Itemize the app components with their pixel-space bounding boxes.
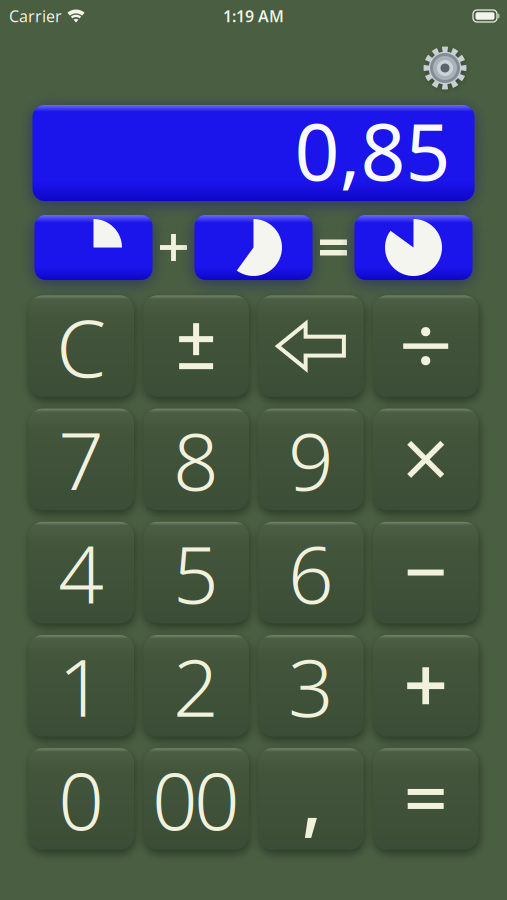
button[interactable]: Multiply (373, 409, 478, 510)
staticText: 9 (288, 406, 334, 512)
button[interactable]: Equals (373, 748, 478, 850)
staticText: 7 (58, 406, 104, 512)
button[interactable]: 0 (29, 748, 134, 850)
button[interactable]: 8 (143, 409, 249, 510)
staticText: 6 (288, 519, 334, 626)
button[interactable]: 3 (258, 635, 364, 736)
staticText: C (56, 293, 106, 399)
button[interactable]: Settings (422, 37, 468, 83)
button[interactable]: Minus (373, 522, 478, 623)
staticText: 1:19 AM (223, 5, 284, 27)
staticText: 0,85 (294, 98, 450, 202)
staticText: 3 (288, 633, 334, 739)
button[interactable]: 6 (258, 522, 364, 623)
button[interactable]: Result fraction (354, 215, 472, 280)
button[interactable]: Divide (373, 295, 478, 397)
button[interactable]: First fraction (34, 215, 152, 280)
button[interactable]: C (29, 295, 134, 397)
button[interactable]: Backspace (258, 295, 364, 397)
button[interactable]: 5 (143, 522, 249, 623)
button[interactable]: Comma (258, 748, 364, 850)
staticText: 0 (152, 746, 198, 852)
staticText: 8 (173, 406, 219, 512)
staticText: 1 (58, 633, 104, 739)
button[interactable]: 2 (143, 635, 249, 736)
button[interactable]: Second fraction (194, 215, 312, 280)
button[interactable]: 0 (143, 748, 249, 850)
button[interactable]: 1 (29, 635, 134, 736)
button[interactable]: 9 (258, 409, 364, 510)
button[interactable]: 7 (29, 409, 134, 510)
staticText: 0 (58, 746, 104, 852)
button[interactable]: Plus (373, 635, 478, 736)
staticText: 4 (58, 519, 104, 626)
button[interactable]: Plus minus (143, 295, 249, 397)
staticText: 2 (173, 633, 219, 739)
staticText: 5 (173, 519, 219, 626)
staticText: 0 (194, 746, 240, 852)
staticText: Carrier (9, 5, 62, 27)
button[interactable]: 4 (29, 522, 134, 623)
